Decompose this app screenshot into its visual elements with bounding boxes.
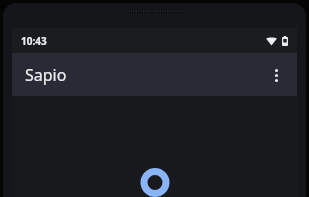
staticText: 10:43: [21, 34, 47, 48]
staticText: Sapio: [25, 64, 259, 86]
button[interactable]: More options: [259, 58, 293, 92]
